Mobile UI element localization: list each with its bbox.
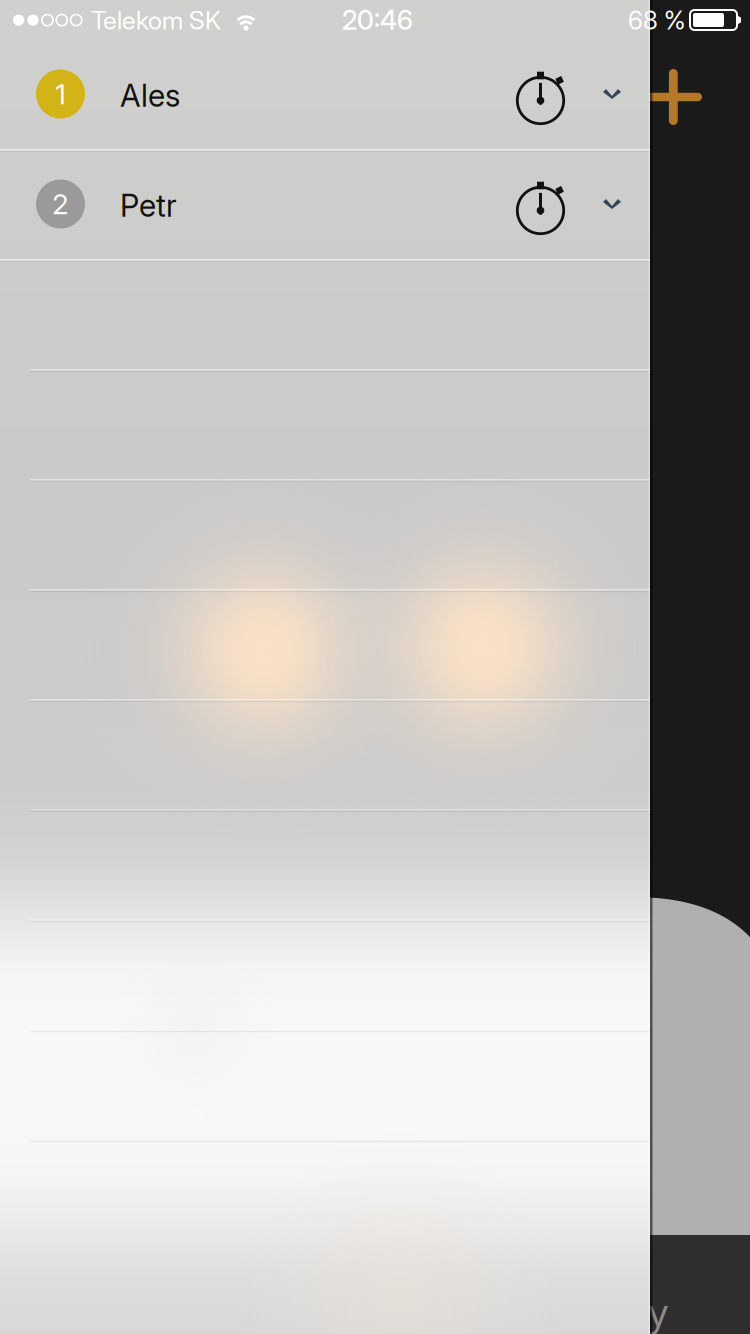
staticText: Telekom SK [91, 5, 221, 36]
staticText: 68 % [628, 5, 685, 36]
staticText: 2 [52, 187, 69, 221]
button[interactable]: Add [619, 45, 727, 149]
button[interactable]: 2 [0, 149, 650, 259]
staticText: 20:46 [342, 4, 413, 36]
staticText: 1 [55, 77, 66, 111]
button[interactable]: 1 [0, 39, 650, 149]
staticText: Ales [120, 77, 180, 114]
staticText: y [648, 1288, 669, 1334]
staticText: Petr [120, 187, 177, 224]
